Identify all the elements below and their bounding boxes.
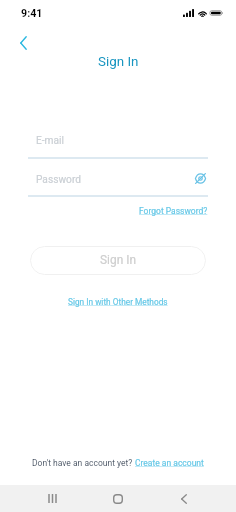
staticText: Don't have an account yet? — [32, 458, 135, 468]
staticText: Password — [36, 174, 194, 186]
button[interactable]: Sign In with Other Methods — [68, 297, 168, 307]
button[interactable]: Recents — [38, 485, 66, 512]
button[interactable]: Back — [170, 485, 198, 512]
button[interactable]: Create an account — [135, 458, 204, 468]
button[interactable]: Show password — [193, 172, 207, 184]
button[interactable]: Back — [11, 31, 35, 55]
staticText: Sign In — [100, 253, 136, 267]
staticText: Sign In — [98, 54, 139, 70]
staticText: 9:41 — [21, 7, 43, 20]
button[interactable]: Sign In — [30, 246, 206, 275]
button[interactable]: Forgot Password? — [139, 206, 208, 216]
button[interactable]: Home — [104, 485, 132, 512]
staticText: E-mail — [36, 135, 65, 147]
